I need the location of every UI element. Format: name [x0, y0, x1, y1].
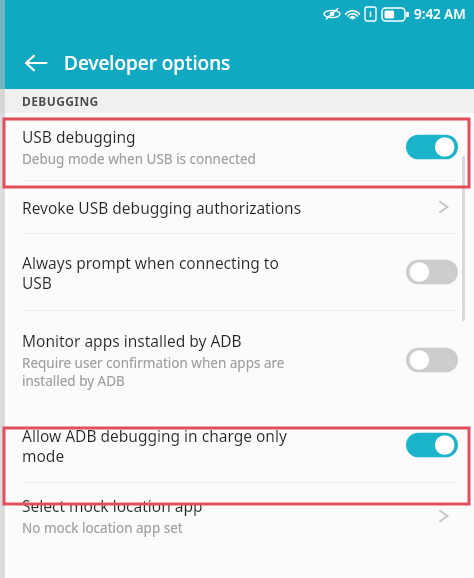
staticText: DEBUGGING — [22, 93, 99, 109]
staticText: Select mock location app — [22, 495, 203, 516]
staticText: Developer options — [64, 50, 231, 76]
button[interactable]: USB debugging — [0, 113, 474, 180]
button[interactable]: Back — [14, 41, 58, 85]
staticText: Always prompt when connecting to USB — [22, 252, 279, 293]
staticText: Monitor apps installed by ADB — [22, 330, 242, 351]
staticText: USB debugging — [22, 126, 136, 147]
button[interactable]: Select mock location app — [0, 483, 474, 549]
button[interactable]: Always prompt when connecting to USB — [0, 234, 474, 310]
staticText: Revoke USB debugging authorizations — [22, 197, 302, 218]
staticText: Require user confirmation when apps are … — [22, 354, 285, 390]
staticText: Debug mode when USB is connected — [22, 150, 256, 168]
button[interactable]: Allow ADB debugging in charge only mode — [0, 408, 474, 482]
button[interactable]: Revoke USB debugging authorizations — [0, 181, 474, 233]
staticText: 9:42 AM — [414, 5, 466, 23]
staticText: No mock location app set — [22, 519, 183, 537]
staticText: Allow ADB debugging in charge only mode — [22, 425, 287, 466]
button[interactable]: Monitor apps installed by ADB — [0, 311, 474, 408]
